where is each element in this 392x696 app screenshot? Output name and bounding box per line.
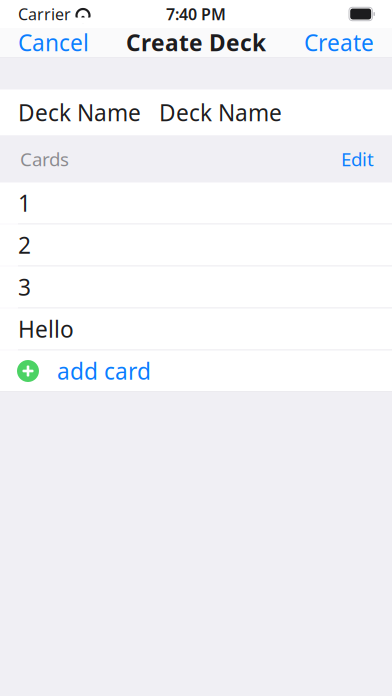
staticText: Cancel xyxy=(18,27,89,57)
button[interactable]: Create xyxy=(286,28,392,57)
button[interactable]: Cancel xyxy=(0,28,107,57)
staticText: 1 xyxy=(18,188,31,218)
staticText: 3 xyxy=(18,272,31,302)
staticText: Cards xyxy=(20,147,69,171)
staticText: Create Deck xyxy=(126,27,266,57)
staticText: Hello xyxy=(18,314,74,344)
staticText: 7:40 PM xyxy=(166,3,226,25)
staticText: add card xyxy=(57,356,151,386)
button[interactable]: add card xyxy=(0,350,392,391)
button[interactable]: Edit xyxy=(323,145,392,173)
button[interactable]: 1 xyxy=(0,182,392,223)
staticText: Deck Name xyxy=(18,97,141,127)
staticText: Carrier xyxy=(18,3,71,25)
staticText: Edit xyxy=(341,147,374,171)
staticText: Deck Name xyxy=(159,97,282,127)
staticText: 2 xyxy=(18,230,31,260)
button[interactable]: 2 xyxy=(0,224,392,265)
staticText: Create xyxy=(304,27,374,57)
button[interactable]: 3 xyxy=(0,266,392,307)
button[interactable]: Hello xyxy=(0,308,392,349)
